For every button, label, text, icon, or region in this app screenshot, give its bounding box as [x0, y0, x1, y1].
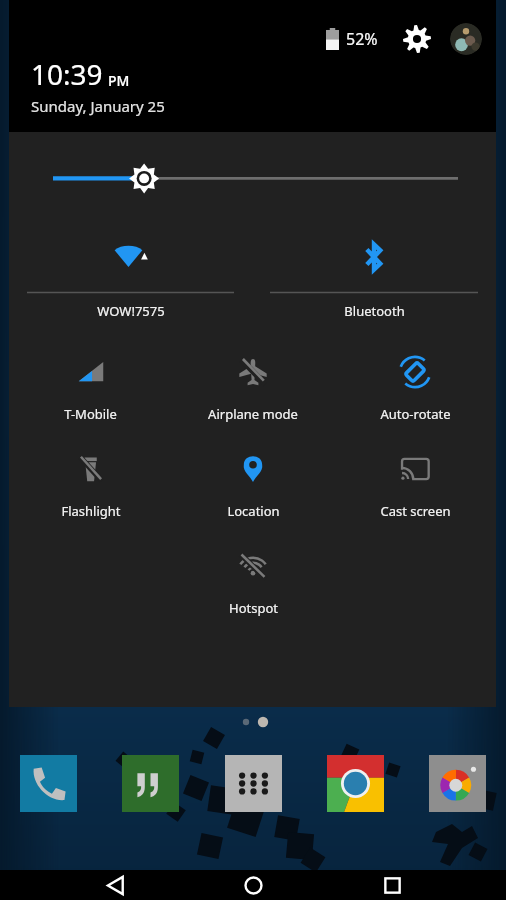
button[interactable]: Auto-rotate	[334, 350, 496, 423]
button[interactable]: Settings	[400, 22, 434, 56]
staticText: Sunday, January 25	[31, 96, 165, 116]
staticText: Auto-rotate	[380, 405, 451, 423]
button[interactable]: Camera	[429, 755, 486, 812]
button[interactable]: Location	[172, 447, 334, 520]
button[interactable]: Home	[229, 870, 277, 900]
staticText: Bluetooth	[344, 302, 405, 320]
button[interactable]: Back	[91, 870, 139, 900]
staticText: 10:39	[31, 55, 103, 93]
button[interactable]: Cast screen	[334, 447, 496, 520]
button[interactable]: Apps	[225, 755, 282, 812]
staticText: Flashlight	[61, 502, 121, 520]
staticText: T-Mobile	[64, 405, 117, 423]
staticText: WOW!7575	[97, 302, 165, 320]
button[interactable]: Chrome	[327, 755, 384, 812]
button[interactable]: Phone	[20, 755, 77, 812]
staticText: Hotspot	[229, 599, 278, 617]
staticText: 52%	[346, 28, 378, 50]
button[interactable]: Recent apps	[368, 870, 416, 900]
button[interactable]: WOW!7575	[9, 234, 252, 320]
button[interactable]: User profile	[450, 23, 482, 55]
button[interactable]: Hangouts	[122, 755, 179, 812]
button[interactable]: Hotspot	[172, 544, 334, 617]
button[interactable]: Flashlight	[9, 447, 172, 520]
button[interactable]: T-Mobile	[9, 350, 172, 423]
button[interactable]: Brightness	[9, 132, 496, 212]
button[interactable]: Airplane mode	[172, 350, 334, 423]
staticText: Location	[227, 502, 280, 520]
staticText: Airplane mode	[208, 405, 298, 423]
staticText: Cast screen	[380, 502, 451, 520]
button[interactable]: Bluetooth	[252, 234, 496, 320]
staticText: PM	[108, 71, 130, 90]
